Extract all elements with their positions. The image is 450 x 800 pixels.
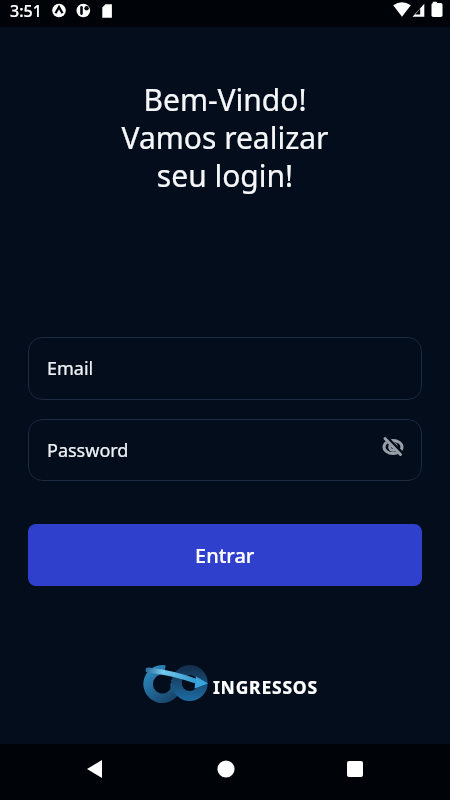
staticText: INGRESSOS bbox=[213, 675, 318, 699]
button[interactable] bbox=[77, 751, 113, 787]
button[interactable]: Entrar bbox=[28, 524, 422, 586]
staticText: Bem-Vindo! Vamos realizar seu login! bbox=[0, 79, 450, 196]
button[interactable] bbox=[337, 751, 373, 787]
staticText: Password bbox=[47, 438, 129, 463]
button[interactable]: Email bbox=[28, 337, 422, 400]
button[interactable] bbox=[208, 751, 244, 787]
staticText: Email bbox=[47, 356, 94, 381]
button[interactable]: Password bbox=[28, 419, 422, 481]
staticText: Entrar bbox=[195, 542, 255, 569]
staticText: 3:51 bbox=[10, 0, 42, 22]
